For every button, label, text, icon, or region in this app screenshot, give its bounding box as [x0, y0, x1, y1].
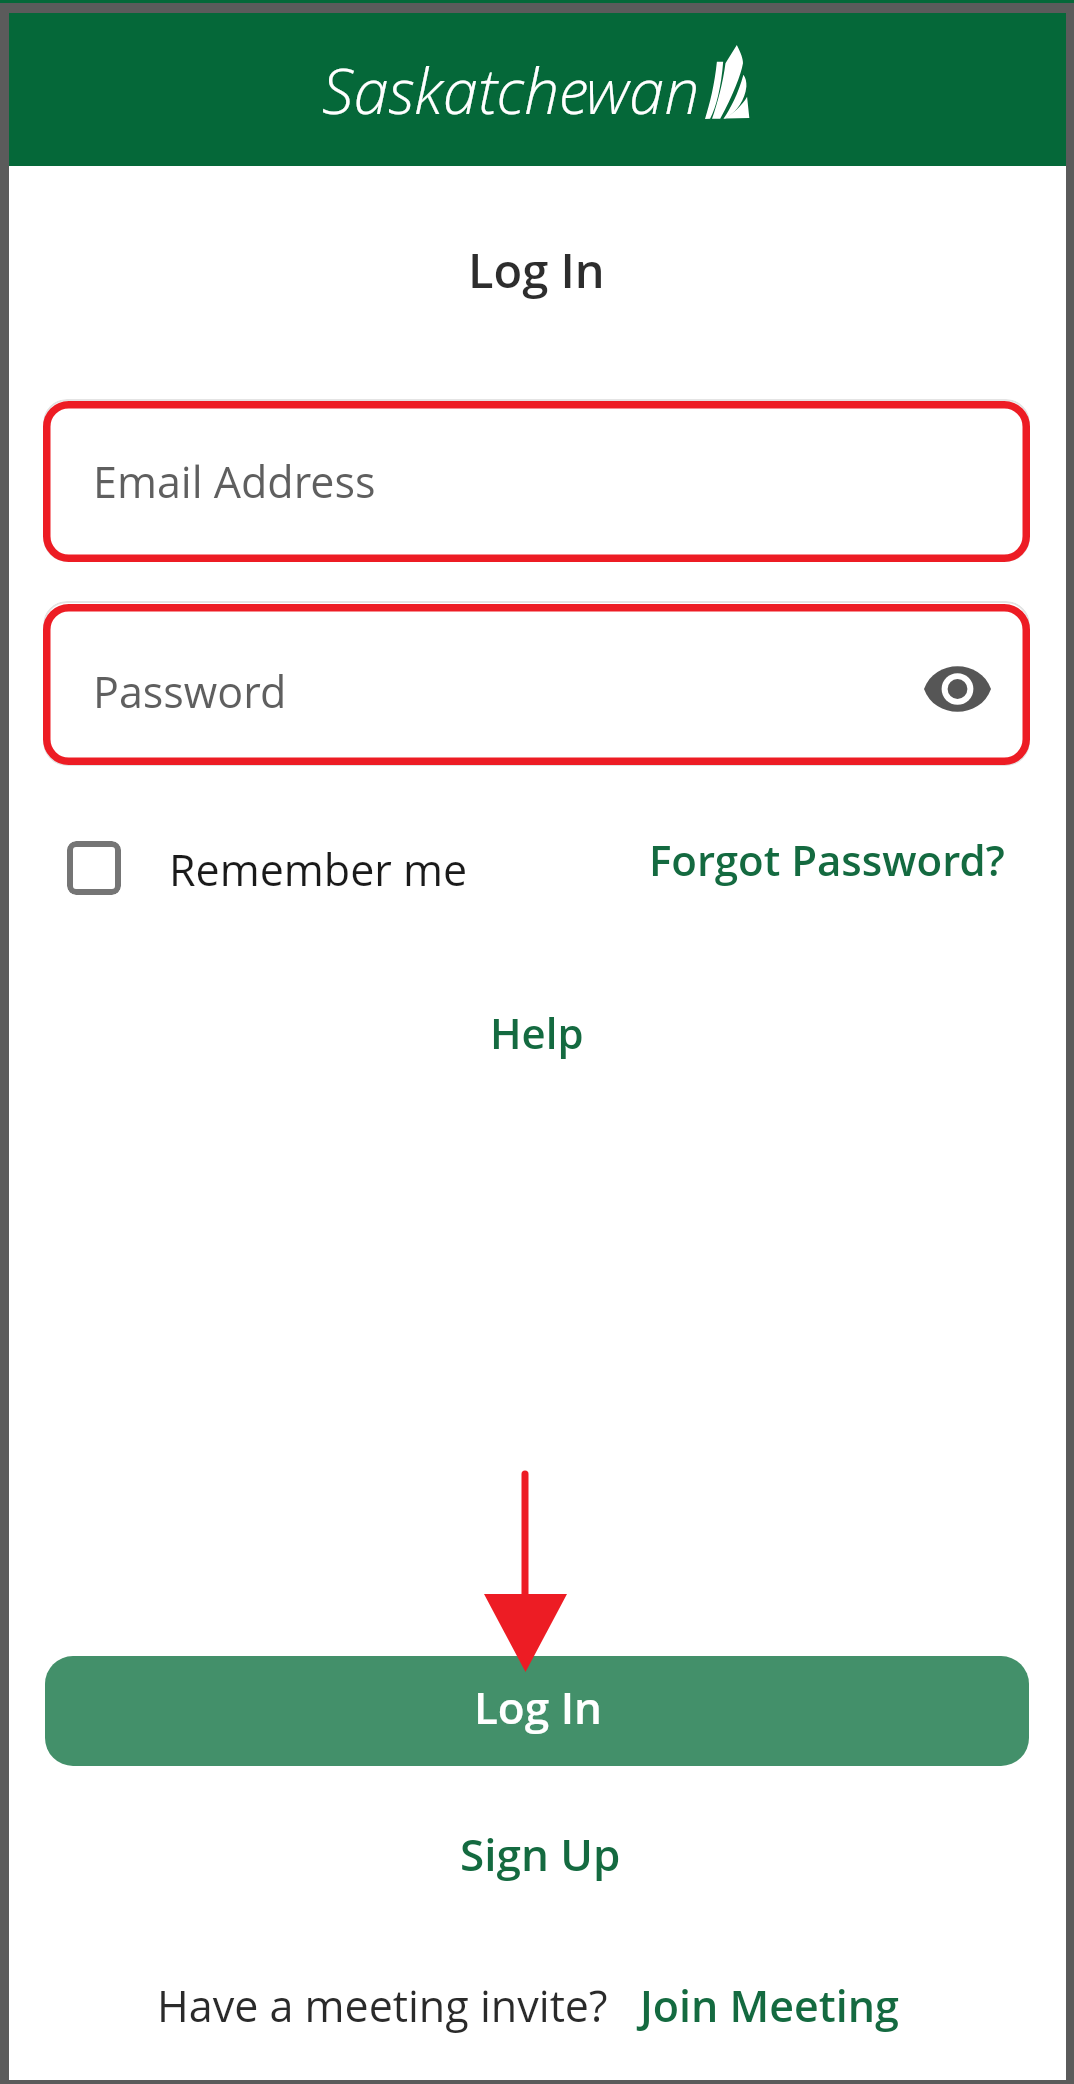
button[interactable]: Join Meeting [640, 1976, 899, 2035]
button[interactable] [45, 1656, 1029, 1766]
button[interactable] [43, 601, 1030, 766]
staticText: Saskatchewan [322, 47, 700, 133]
button[interactable]: Forgot Password? [649, 831, 1005, 888]
button[interactable]: Show password [914, 646, 1000, 731]
button[interactable] [43, 399, 1030, 562]
staticText: Email Address [93, 452, 376, 511]
staticText: Log In [468, 238, 605, 302]
staticText: Remember me [169, 840, 468, 899]
button[interactable]: Sign Up [460, 1824, 621, 1884]
staticText: Password [93, 662, 287, 721]
staticText: Log In [474, 1677, 602, 1737]
button[interactable] [60, 834, 540, 902]
button[interactable]: Help [490, 1004, 584, 1061]
staticText: Have a meeting invite? [157, 1976, 608, 2035]
